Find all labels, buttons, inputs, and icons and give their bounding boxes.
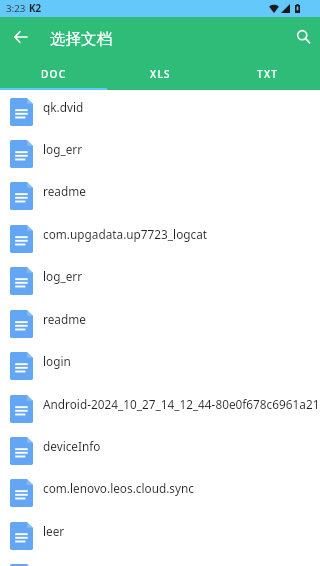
button[interactable]: com.upgadata.up7723_logcat [0, 218, 320, 260]
button[interactable]: Back [0, 17, 41, 58]
button[interactable]: readme [0, 175, 320, 217]
staticText: com.upgadata.up7723_logcat [43, 226, 208, 242]
button[interactable]: Android-2024_10_27_14_12_44-80e0f678c696… [0, 388, 320, 430]
staticText: log_err [43, 268, 83, 284]
button[interactable]: XLS [106, 58, 213, 90]
staticText: leer [43, 523, 65, 539]
staticText: com.lenovo.leos.cloud.sync [43, 480, 194, 496]
button[interactable]: log_err [0, 557, 320, 566]
button[interactable]: log_err [0, 133, 320, 175]
button[interactable]: log_err [0, 260, 320, 302]
button[interactable]: qk.dvid [0, 91, 320, 133]
button[interactable]: deviceInfo [0, 430, 320, 472]
button[interactable]: Search [277, 17, 318, 58]
button[interactable]: DOC [0, 58, 106, 90]
staticText: login [43, 353, 71, 369]
staticText: deviceInfo [43, 438, 101, 454]
button[interactable]: com.lenovo.leos.cloud.sync [0, 472, 320, 514]
button[interactable]: login [0, 345, 320, 387]
staticText: XLS [150, 67, 171, 81]
button[interactable]: TXT [213, 58, 320, 90]
staticText: readme [43, 183, 86, 199]
staticText: K2 [29, 2, 42, 15]
button[interactable]: leer [0, 515, 320, 557]
staticText: TXT [257, 67, 279, 81]
staticText: DOC [41, 67, 67, 81]
staticText: qk.dvid [43, 99, 84, 115]
staticText: readme [43, 311, 86, 327]
staticText: 选择文档 [50, 29, 112, 49]
staticText: log_err [43, 141, 83, 157]
staticText: 3:23 [6, 2, 26, 15]
staticText: Android-2024_10_27_14_12_44-80e0f678c696… [43, 396, 320, 412]
button[interactable]: readme [0, 303, 320, 345]
